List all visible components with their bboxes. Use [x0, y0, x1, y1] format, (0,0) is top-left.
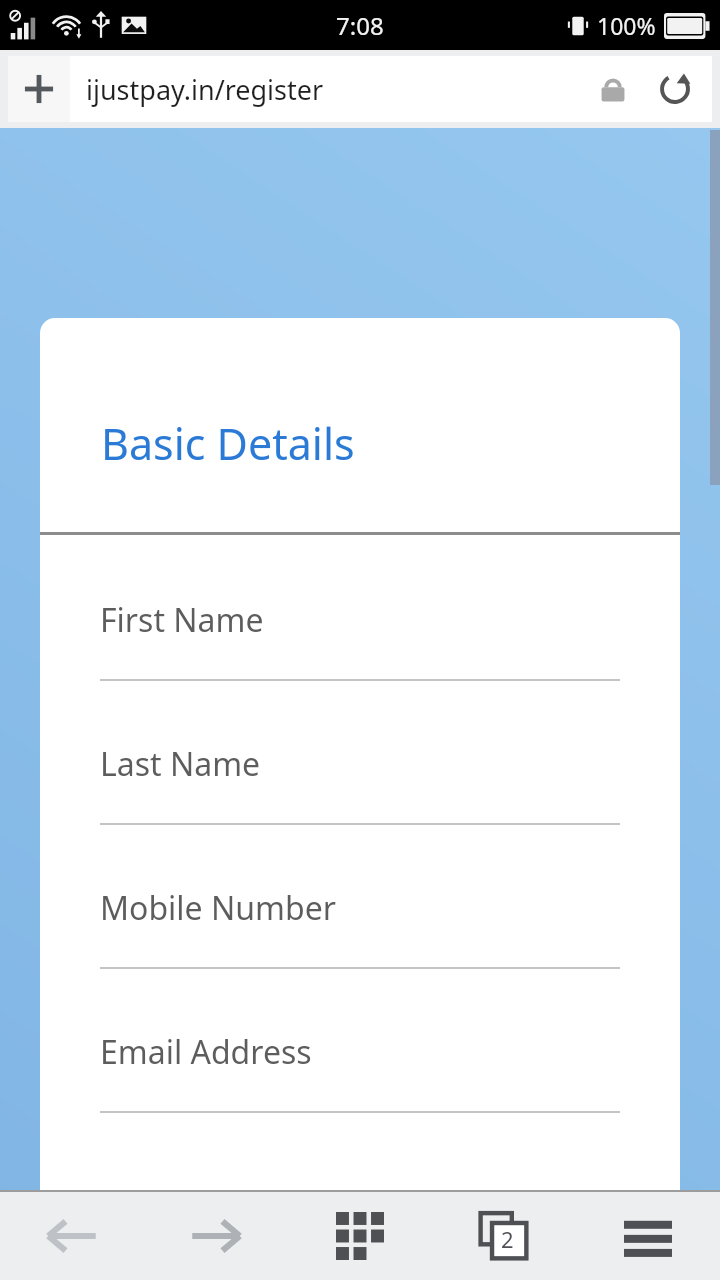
- button[interactable]: Reload: [652, 66, 698, 112]
- button[interactable]: Mobile Number: [40, 849, 680, 993]
- button[interactable]: New tab: [8, 56, 70, 122]
- staticText: 2: [501, 1224, 514, 1254]
- button[interactable]: Back: [0, 1192, 144, 1280]
- staticText: Mobile Number: [100, 886, 336, 930]
- button[interactable]: Tabs: [432, 1192, 576, 1280]
- button[interactable]: First Name: [40, 561, 680, 705]
- button[interactable]: Home: [288, 1192, 432, 1280]
- button[interactable]: Site security: [592, 68, 634, 110]
- button[interactable]: Menu: [576, 1192, 720, 1280]
- button[interactable]: Email Address: [40, 993, 680, 1137]
- staticText: ijustpay.in/register: [86, 71, 592, 108]
- staticText: 7:08: [336, 9, 384, 42]
- button[interactable]: ijustpay.in/register: [70, 56, 712, 122]
- button[interactable]: Forward: [144, 1192, 288, 1280]
- staticText: Email Address: [100, 1030, 312, 1074]
- button[interactable]: Last Name: [40, 705, 680, 849]
- staticText: First Name: [100, 598, 264, 642]
- staticText: Basic Details: [101, 414, 355, 473]
- staticText: Last Name: [100, 742, 261, 786]
- staticText: 100%: [597, 10, 656, 41]
